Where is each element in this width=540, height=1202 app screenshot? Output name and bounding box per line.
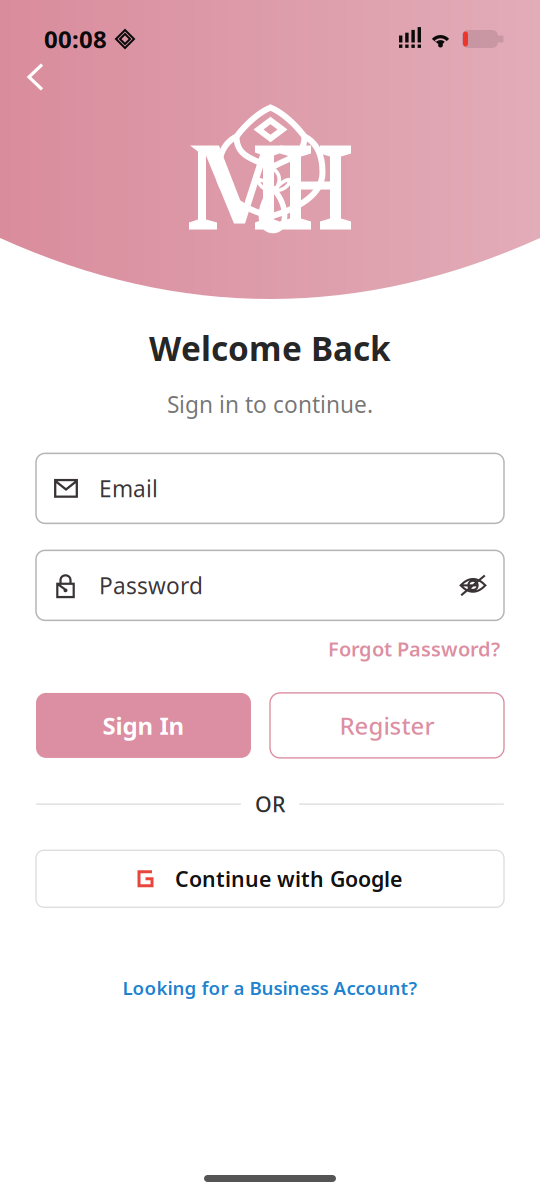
staticText: Register (339, 709, 434, 741)
button[interactable]: Forgot Password? (328, 635, 500, 662)
staticText: Sign In (102, 709, 184, 741)
staticText: Forgot Password? (328, 635, 500, 662)
staticText: OR (255, 790, 285, 818)
staticText: Welcome Back (149, 326, 391, 370)
staticText: Password (99, 570, 203, 600)
staticText: Continue with Google (175, 865, 402, 893)
staticText: Email (99, 473, 158, 503)
button[interactable]: Register (270, 693, 504, 758)
staticText: Sign in to continue. (167, 389, 373, 419)
button[interactable]: Looking for a Business Account? (122, 975, 417, 1000)
button[interactable]: Sign In (36, 693, 251, 758)
staticText: Looking for a Business Account? (122, 975, 417, 1000)
button[interactable]: Continue with Google (36, 850, 504, 907)
staticText: 00:08 (44, 23, 107, 55)
button[interactable]: Back (17, 53, 53, 99)
